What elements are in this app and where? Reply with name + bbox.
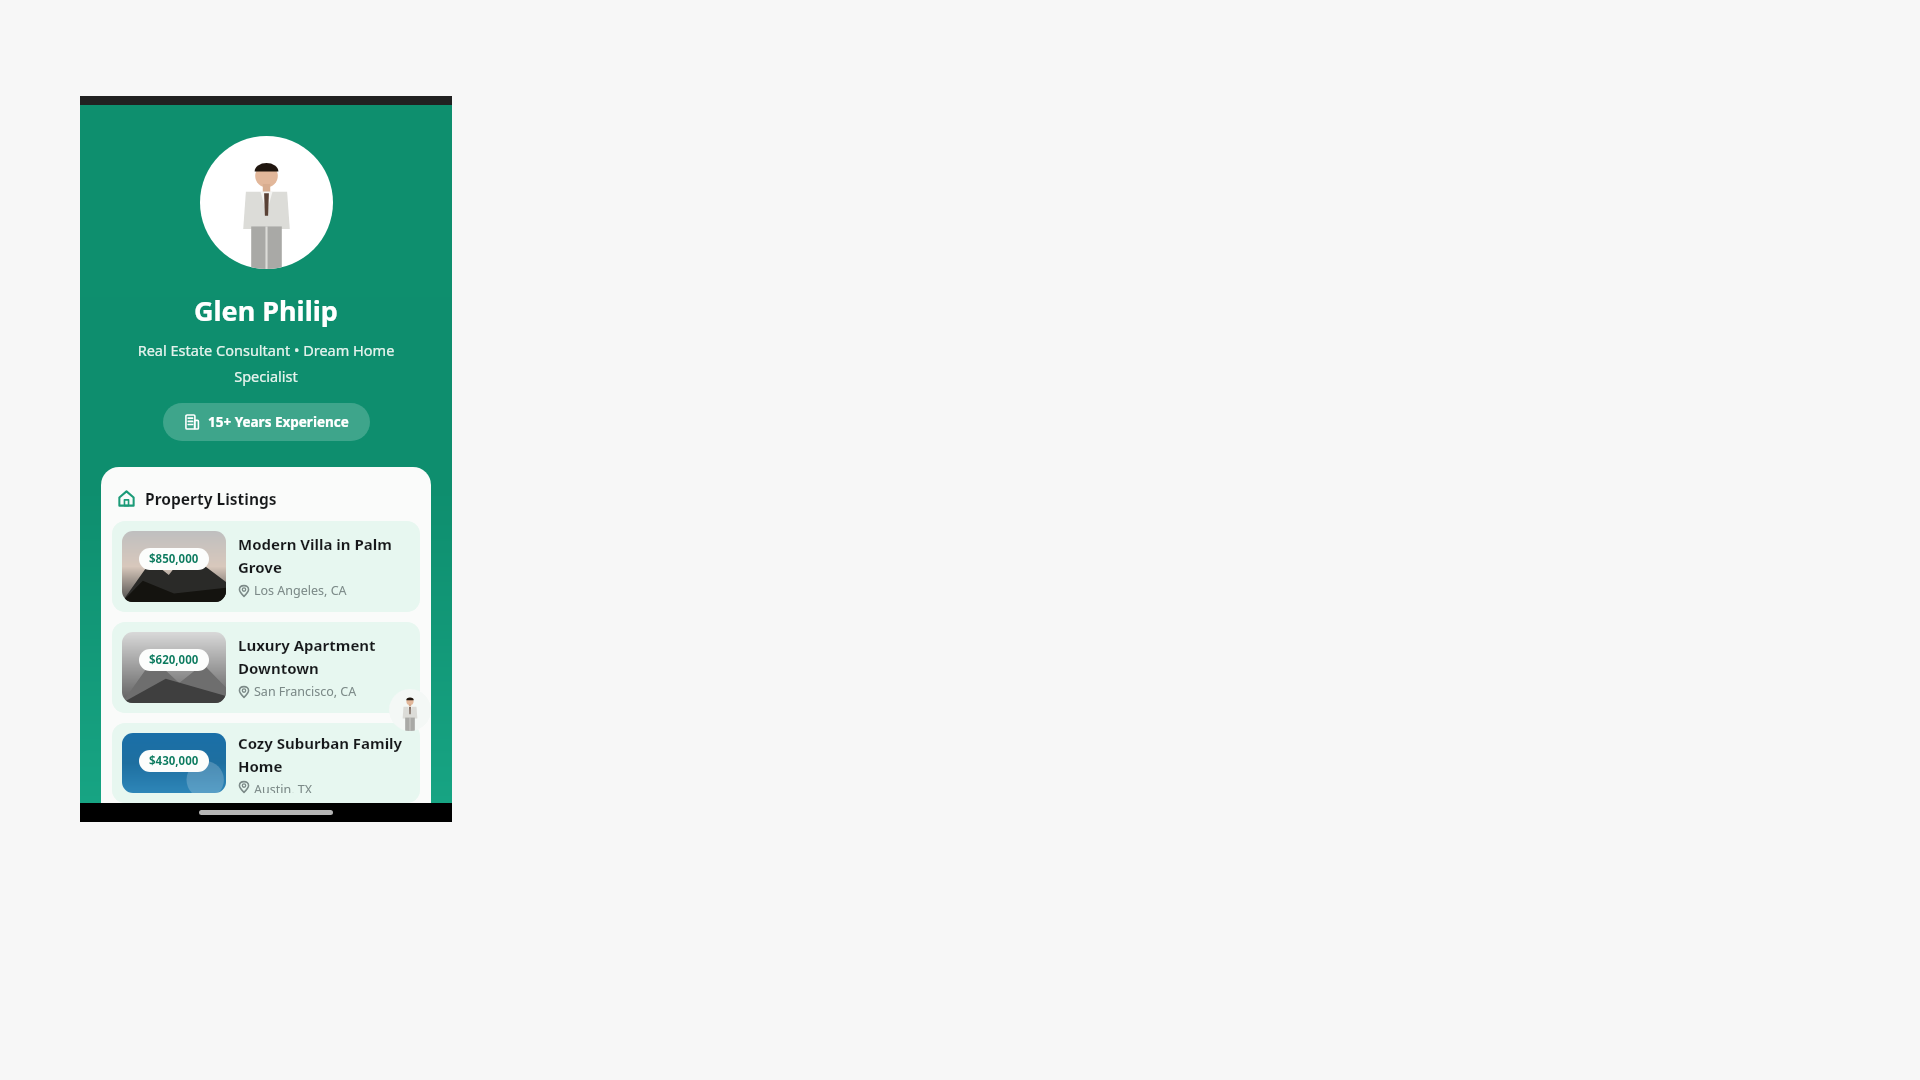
button[interactable]: $850,000 [112, 521, 420, 612]
button[interactable]: Property Listings [118, 488, 277, 509]
staticText: San Francisco, CA [254, 683, 357, 700]
staticText: Austin, TX [254, 781, 313, 793]
staticText: Glen Philip [194, 292, 338, 329]
staticText: Modern Villa in Palm Grove [238, 534, 410, 577]
button[interactable]: 15+ Years Experience [163, 403, 370, 441]
button[interactable]: $430,000 [112, 723, 420, 803]
staticText: $850,000 [149, 551, 199, 567]
staticText: Property Listings [145, 488, 277, 509]
staticText: Real Estate Consultant • Dream Home Spec… [116, 340, 416, 386]
staticText: Los Angeles, CA [254, 582, 347, 599]
button[interactable]: Contact agent [389, 689, 431, 731]
staticText: $620,000 [149, 652, 199, 668]
button[interactable]: $620,000 [112, 622, 420, 713]
staticText: Cozy Suburban Family Home [238, 733, 410, 776]
staticText: $430,000 [149, 753, 199, 769]
staticText: 15+ Years Experience [208, 413, 349, 431]
button[interactable]: Profile photo [200, 136, 333, 269]
staticText: Luxury Apartment Downtown [238, 635, 410, 678]
